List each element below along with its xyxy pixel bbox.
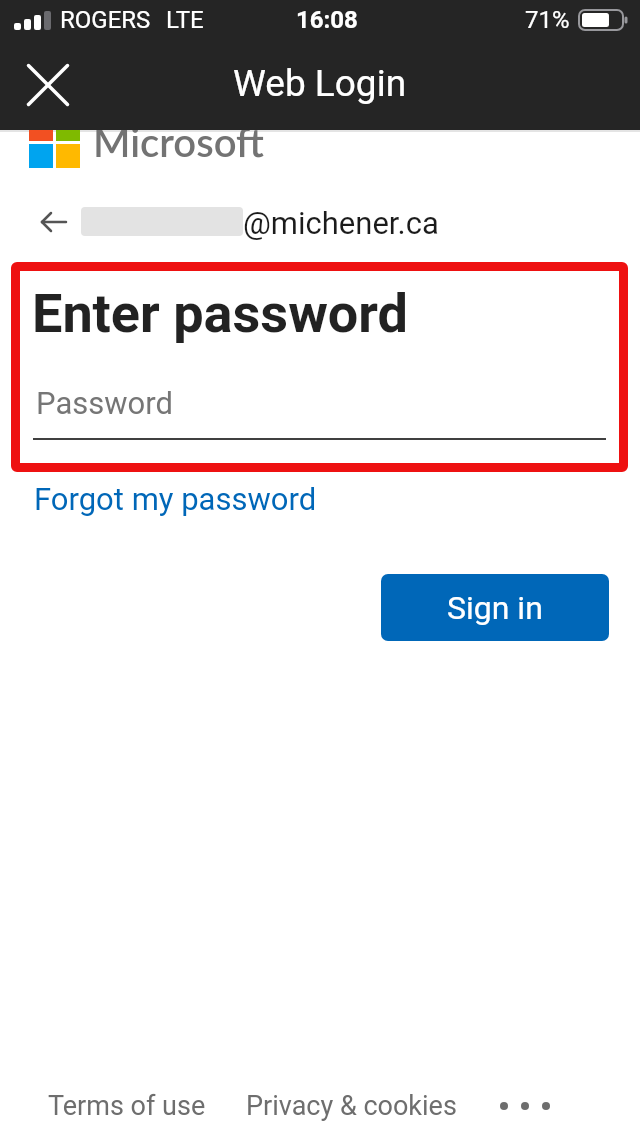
staticText: Password [36,385,173,421]
staticText: Microsoft [93,130,264,166]
staticText: 16:08 [296,6,358,34]
staticText: LTE [166,6,204,34]
staticText: @michener.ca [243,205,439,241]
staticText: Enter password [32,282,409,345]
button[interactable] [18,55,78,115]
button[interactable] [499,1101,551,1111]
staticText: Web Login [233,62,407,105]
button[interactable] [34,204,74,240]
staticText: Sign in [447,589,543,627]
staticText: ROGERS [60,6,151,34]
staticText: 71% [525,6,570,34]
button[interactable]: Privacy & cookies [246,1090,457,1122]
button[interactable]: Forgot my password [34,481,317,517]
button[interactable]: Terms of use [48,1090,206,1122]
button[interactable]: Sign in [381,574,609,641]
